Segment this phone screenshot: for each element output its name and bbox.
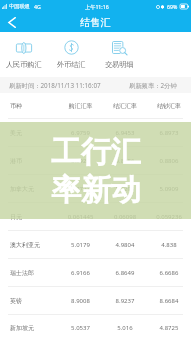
staticText: 8.9237 <box>103 297 147 305</box>
staticText: 8.6684 <box>147 297 191 305</box>
staticText: 0.059236 <box>147 213 191 221</box>
button[interactable]: 交易明细 <box>95 32 143 77</box>
staticText: 结汇汇率 <box>103 102 147 110</box>
staticText: 0.8806 <box>147 157 191 165</box>
staticText: 0.8925 <box>58 157 103 165</box>
button[interactable]: 澳大利亚元 <box>0 231 191 258</box>
staticText: 5.016 <box>103 324 147 332</box>
staticText: 加拿大元 <box>10 185 34 193</box>
staticText: 日元 <box>10 213 22 221</box>
staticText: 币种 <box>10 102 22 110</box>
staticText: 外币结汇 <box>57 60 86 69</box>
staticText: 5.0537 <box>58 324 103 332</box>
staticText: 中国联通 <box>9 3 30 10</box>
button[interactable]: 新加坡元 <box>0 315 191 340</box>
button[interactable]: 外币结汇 <box>47 32 95 77</box>
staticText: 69% <box>167 3 178 10</box>
staticText: 刷新时间：2018/11/13 11:16:07 <box>9 81 101 90</box>
staticText: 5.2727 <box>58 185 103 193</box>
staticText: 工行汇 <box>51 133 141 171</box>
staticText: 交易明细 <box>105 60 134 69</box>
staticText: 0.06098 <box>103 213 147 221</box>
button[interactable]: 加拿大元 <box>0 175 191 202</box>
staticText: 购汇汇率 <box>58 102 103 110</box>
staticText: 5.0909 <box>147 185 191 193</box>
staticText: 6.9453 <box>103 129 147 137</box>
staticText: 4G <box>34 3 41 10</box>
button[interactable]: 港币 <box>0 147 191 174</box>
staticText: 刷新频率：2分钟 <box>129 81 177 90</box>
staticText: 8.9008 <box>58 297 103 305</box>
staticText: 4.9804 <box>103 241 147 249</box>
staticText: 6.6686 <box>147 269 191 277</box>
staticText: 新加坡元 <box>10 324 34 332</box>
staticText: 澳大利亚元 <box>10 241 40 249</box>
staticText: 0.8886 <box>103 157 147 165</box>
staticText: 0.061445 <box>58 213 103 221</box>
staticText: 6.9166 <box>58 269 103 277</box>
staticText: 6.8649 <box>103 269 147 277</box>
button[interactable]: 日元 <box>0 203 191 230</box>
staticText: 英镑 <box>10 297 22 305</box>
staticText: 4.838 <box>147 241 191 249</box>
staticText: 率新动 <box>51 171 141 209</box>
button[interactable]: 瑞士法郎 <box>0 259 191 286</box>
button[interactable]: 人民币购汇 <box>0 32 47 77</box>
button[interactable]: 英镑 <box>0 287 191 314</box>
staticText: 5.2299 <box>103 185 147 193</box>
button[interactable]: 美元 <box>0 119 191 146</box>
staticText: 瑞士法郎 <box>10 269 34 277</box>
staticText: 4.8725 <box>147 324 191 332</box>
staticText: 人民币购汇 <box>6 60 42 69</box>
staticText: 结售汇 <box>80 16 111 29</box>
staticText: 6.8973 <box>147 129 191 137</box>
staticText: 上午11:16 <box>85 3 109 10</box>
staticText: 港币 <box>10 157 22 165</box>
button[interactable]: 币种 <box>0 93 191 118</box>
staticText: 6.9759 <box>58 129 103 137</box>
staticText: 美元 <box>10 129 22 137</box>
staticText: 结钞汇率 <box>147 102 191 110</box>
button[interactable]: Back <box>0 13 24 32</box>
staticText: 5.0179 <box>58 241 103 249</box>
